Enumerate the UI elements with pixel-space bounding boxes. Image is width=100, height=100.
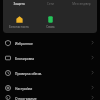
staticText: Блокировка: [15, 56, 35, 60]
staticText: Безопасность: [9, 25, 29, 29]
other: Открыть: [90, 55, 95, 60]
staticText: Проверка обнов.: [15, 71, 43, 75]
other: Открыть: [90, 70, 95, 75]
button[interactable]: Безопасность: [3, 8, 35, 33]
button[interactable]: Мессенджер: [66, 0, 97, 8]
button[interactable]: Связь: [35, 8, 66, 33]
button[interactable]: Проверка обнов.: [0, 65, 100, 80]
staticText: Мессенджер: [72, 2, 91, 6]
staticText: О программе: [15, 96, 37, 100]
staticText: Сети: [47, 2, 54, 6]
staticText: Избранное: [15, 41, 33, 45]
button[interactable]: Избранное: [0, 35, 100, 50]
other: Открыть: [90, 95, 95, 100]
staticText: Защита: [13, 2, 25, 6]
staticText: Связь: [46, 25, 55, 29]
other: Открыть: [90, 40, 95, 45]
button[interactable]: Блокировка: [0, 50, 100, 65]
other: Открыть: [90, 85, 95, 90]
staticText: Настройки: [15, 86, 33, 90]
button[interactable]: О программе: [0, 95, 100, 100]
button[interactable]: Настройки: [0, 80, 100, 95]
button[interactable]: Сети: [35, 0, 66, 8]
button[interactable]: Защита: [3, 0, 35, 8]
